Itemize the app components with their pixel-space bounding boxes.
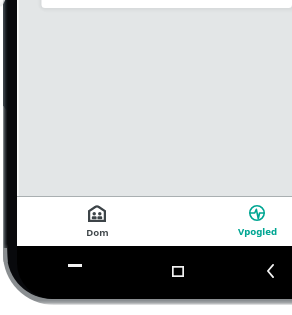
staticText: Vpogled <box>238 225 277 238</box>
button[interactable]: Back <box>255 256 285 286</box>
button[interactable]: Recents <box>58 250 92 280</box>
button[interactable]: Dom <box>65 197 129 246</box>
button[interactable]: Home <box>161 256 195 286</box>
staticText: Dom <box>86 226 109 239</box>
button[interactable]: Vpogled <box>225 197 289 246</box>
